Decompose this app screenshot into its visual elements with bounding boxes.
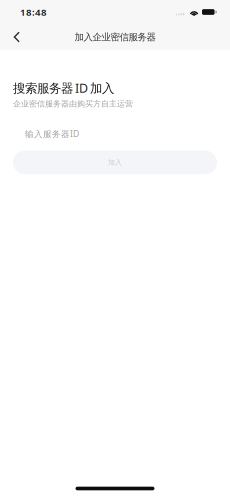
staticText: 加入企业密信服务器 [74,31,155,43]
staticText: 搜索服务器 ID 加入 [13,79,114,96]
button[interactable]: Back [0,25,34,49]
staticText: 输入服务器ID [25,128,79,140]
staticText: 18:48 [20,5,47,19]
staticText: 企业密信服务器由购买方自主运营 [13,99,133,109]
staticText: 加入 [108,158,122,167]
